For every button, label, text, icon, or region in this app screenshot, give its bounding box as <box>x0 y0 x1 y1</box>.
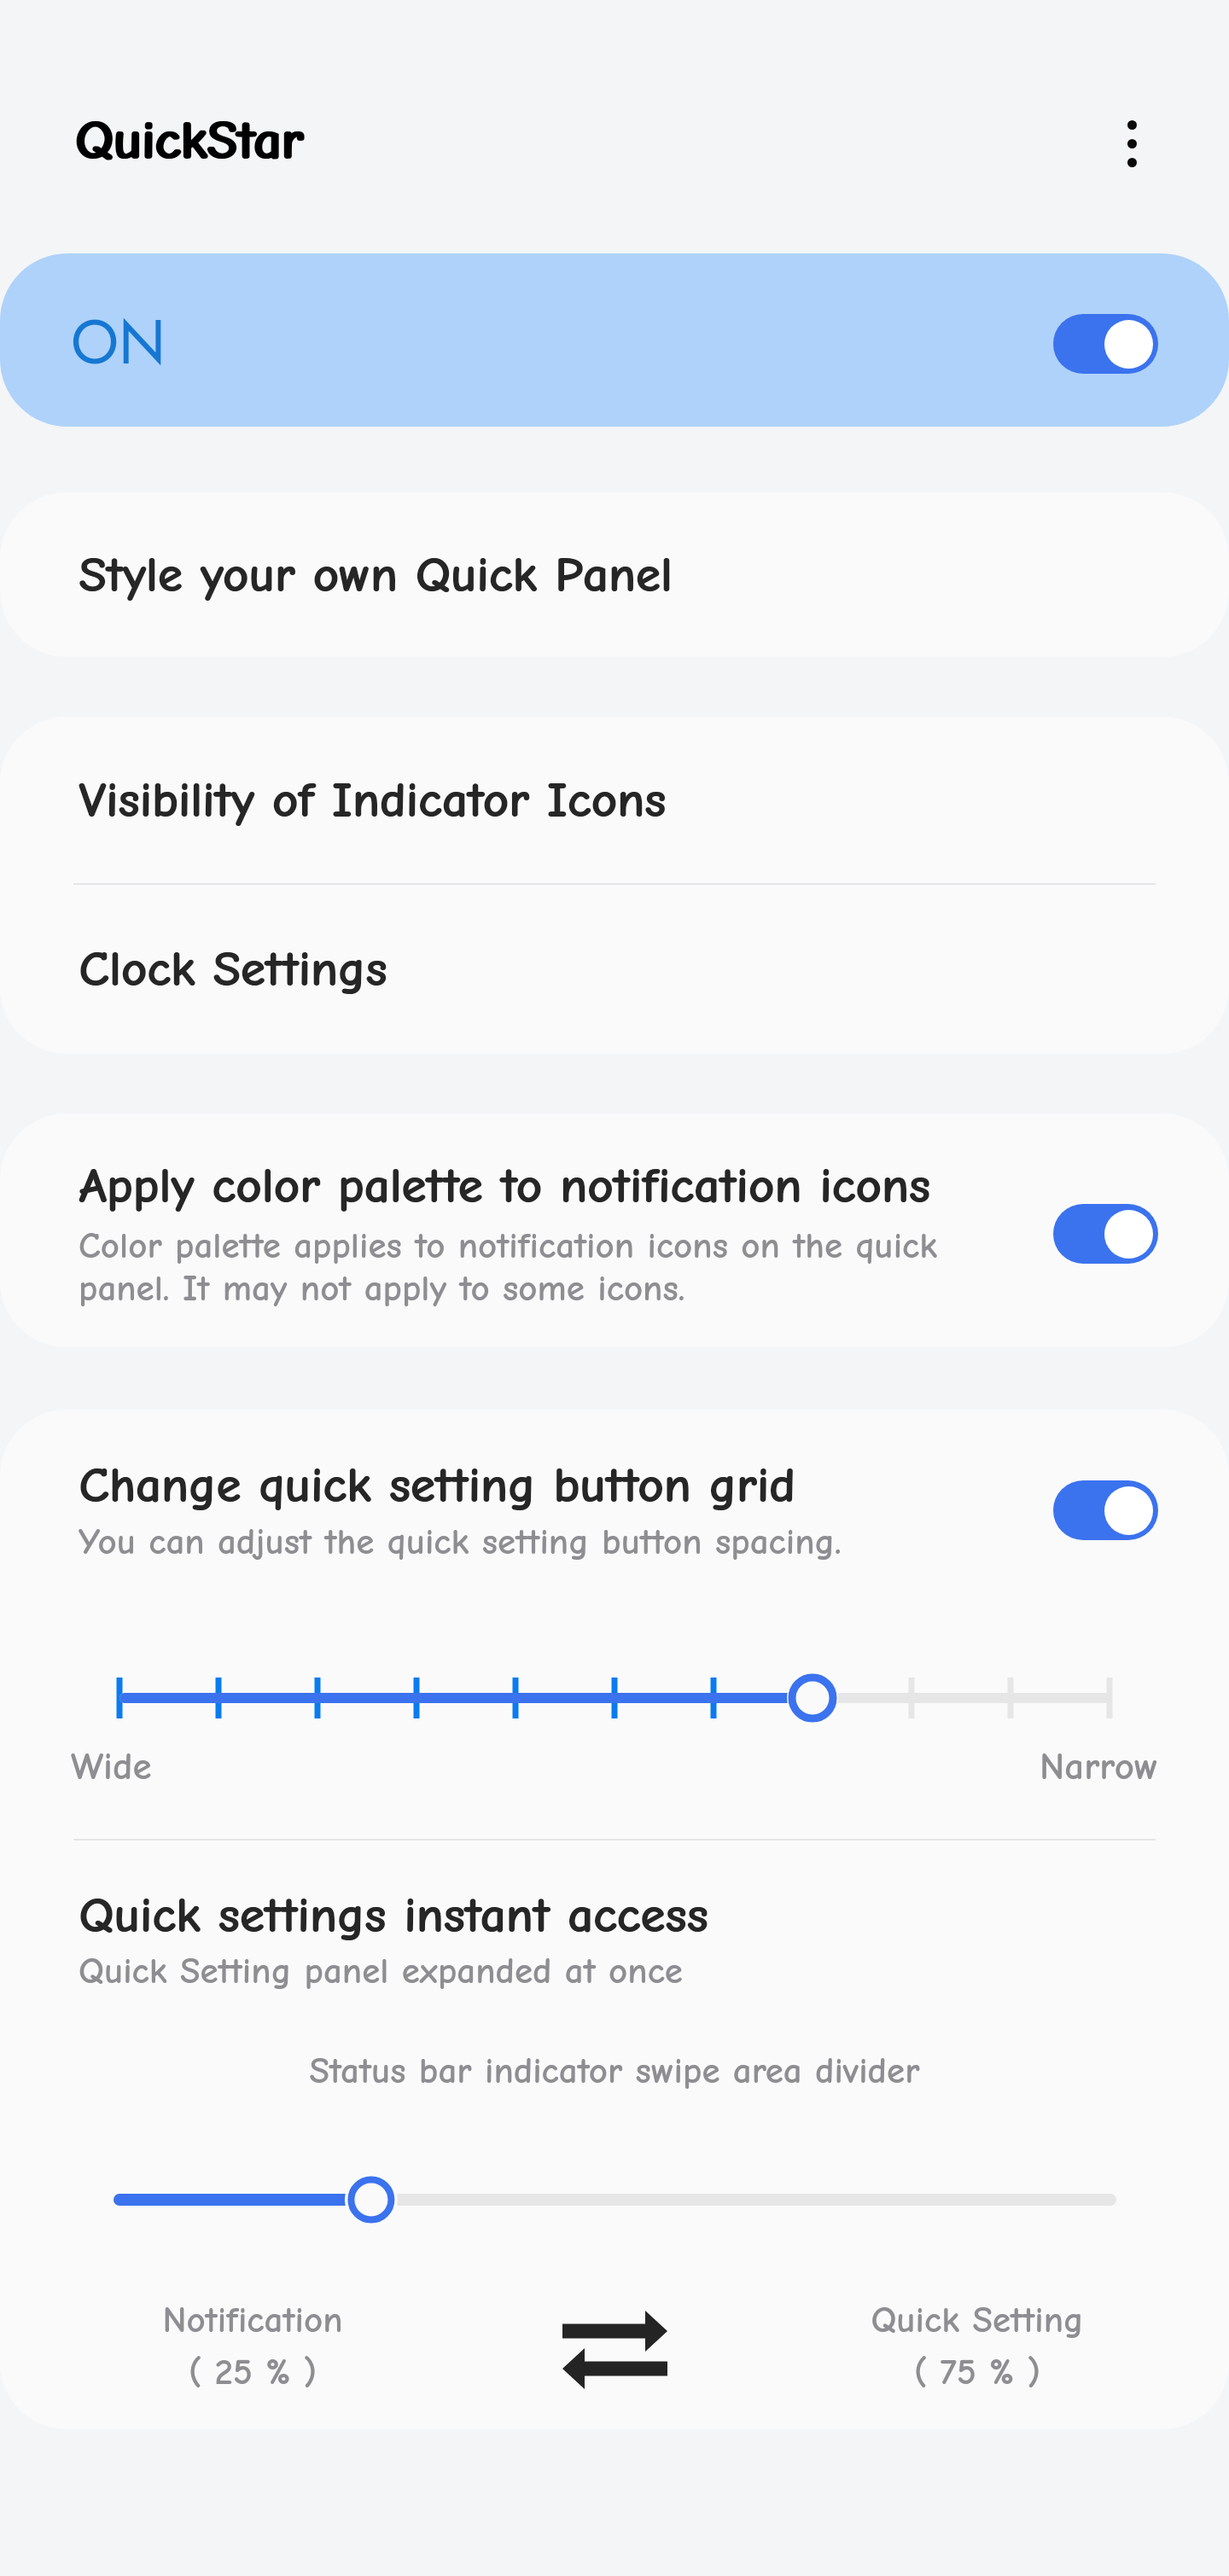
button[interactable]: Toggle <box>1053 1480 1158 1540</box>
staticText: Quick Setting panel expanded at once <box>79 1950 683 1992</box>
staticText: Clock Settings <box>79 940 388 998</box>
button[interactable]: ON <box>0 253 1229 427</box>
button[interactable]: Apply color palette to notification icon… <box>0 1114 1229 1347</box>
staticText: Apply color palette to notification icon… <box>79 1157 931 1215</box>
staticText: Color palette applies to notification ic… <box>79 1224 941 1310</box>
button[interactable]: Toggle <box>1053 314 1158 374</box>
button[interactable]: Toggle <box>1053 1204 1158 1264</box>
staticText: Clock Settings <box>79 940 387 998</box>
button[interactable]: Notification <box>56 2293 449 2335</box>
button[interactable]: Clock Settings <box>0 885 1229 1054</box>
staticText: Notification <box>56 2299 449 2340</box>
staticText: Style your own Quick Panel <box>79 546 673 604</box>
staticText: Quick settings instant access <box>79 1887 708 1945</box>
staticText: Style your own Quick Panel <box>79 546 673 604</box>
button[interactable]: More options <box>1089 101 1174 186</box>
staticText: Quick Setting <box>781 2299 1174 2340</box>
button[interactable]: Quick Setting <box>781 2293 1174 2335</box>
button[interactable]: Style your own Quick Panel <box>0 492 1229 657</box>
button[interactable]: Change quick setting button grid <box>0 1410 1229 1604</box>
staticText: QuickStar <box>74 109 303 172</box>
staticText: QuickStar <box>75 109 304 172</box>
staticText: ON <box>71 299 166 387</box>
staticText: You can adjust the quick setting button … <box>79 1521 842 1562</box>
button[interactable]: Visibility of Indicator Icons <box>0 717 1229 883</box>
staticText: Change quick setting button grid <box>79 1457 795 1515</box>
staticText: Status bar indicator swipe area divider <box>0 2050 1229 2091</box>
staticText: Apply color palette to notification icon… <box>79 1157 930 1215</box>
staticText: Visibility of Indicator Icons <box>79 771 666 829</box>
staticText: Visibility of Indicator Icons <box>79 771 667 829</box>
staticText: ( 25 % ) <box>56 2351 449 2393</box>
staticText: Narrow <box>1040 1744 1159 1788</box>
staticText: Change quick setting button grid <box>79 1457 796 1515</box>
button[interactable]: Swap notification and quick setting rati… <box>546 2299 683 2401</box>
staticText: ( 75 % ) <box>781 2351 1174 2393</box>
button[interactable]: Quick settings instant access <box>0 1870 1229 2007</box>
staticText: QuickStar <box>77 109 306 172</box>
staticText: Wide <box>71 1744 152 1788</box>
staticText: Quick settings instant access <box>79 1887 709 1945</box>
